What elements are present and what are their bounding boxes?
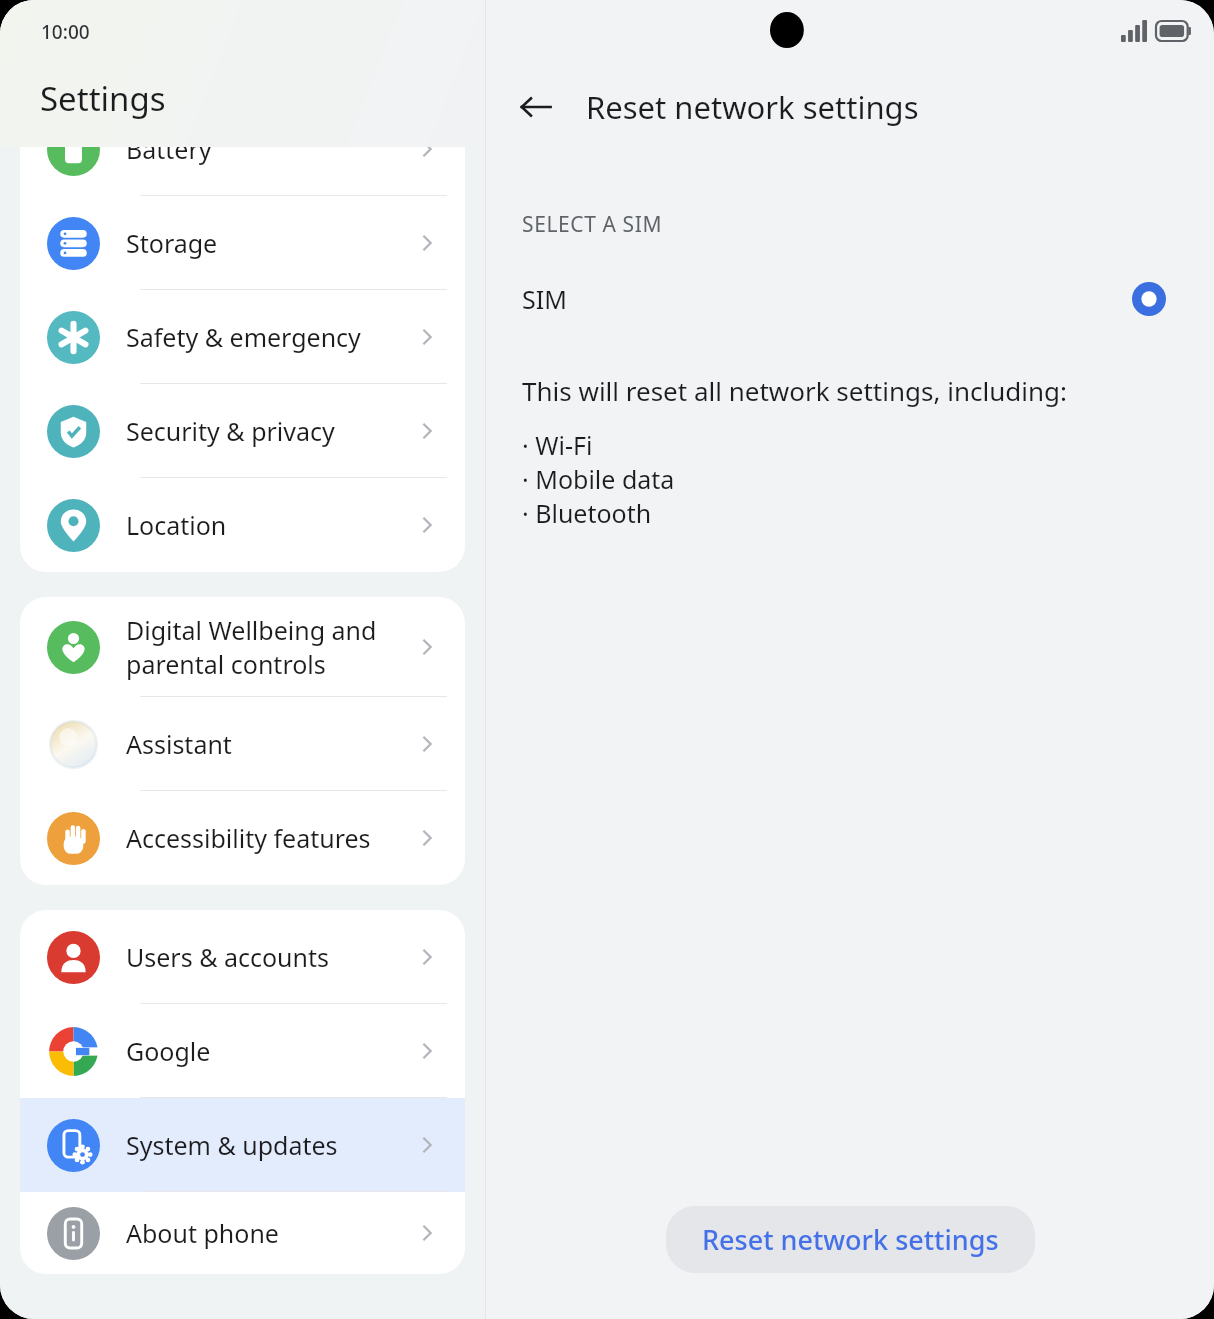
staticText: Security & privacy <box>126 414 407 448</box>
staticText: · Mobile data <box>522 462 675 496</box>
staticText: Storage <box>126 226 407 260</box>
button[interactable]: Assistant <box>20 697 465 791</box>
staticText: Users & accounts <box>126 940 407 974</box>
staticText: Settings <box>40 76 166 121</box>
staticText: Reset network settings <box>702 1221 999 1258</box>
staticText: Location <box>126 508 407 542</box>
staticText: Safety & emergency <box>126 320 407 354</box>
staticText: Google <box>126 1034 407 1068</box>
button[interactable]: Digital Wellbeing and parental controls <box>20 597 465 697</box>
staticText: Assistant <box>126 727 407 761</box>
staticText: SELECT A SIM <box>522 210 663 239</box>
staticText: SIM <box>522 282 1132 316</box>
staticText: Accessibility features <box>126 821 407 855</box>
button[interactable]: Reset network settings <box>666 1206 1035 1273</box>
button[interactable]: Location <box>20 478 465 572</box>
button[interactable]: Back <box>508 79 564 135</box>
staticText: About phone <box>126 1216 407 1250</box>
staticText: 10:00 <box>41 19 90 45</box>
staticText: · Wi-Fi <box>522 428 593 462</box>
staticText: This will reset all network settings, in… <box>522 373 1067 408</box>
button[interactable]: Safety & emergency <box>20 290 465 384</box>
staticText: Reset network settings <box>586 86 919 128</box>
staticText: · Bluetooth <box>522 496 652 530</box>
button[interactable]: Accessibility features <box>20 791 465 885</box>
button[interactable]: SIM <box>486 273 1214 325</box>
button[interactable]: Security & privacy <box>20 384 465 478</box>
staticText: Battery <box>126 132 407 166</box>
button[interactable]: Users & accounts <box>20 910 465 1004</box>
staticText: System & updates <box>126 1128 407 1162</box>
button[interactable]: About phone <box>20 1192 465 1274</box>
staticText: Digital Wellbeing and parental controls <box>126 613 407 681</box>
button[interactable]: Storage <box>20 196 465 290</box>
button[interactable]: Battery <box>20 102 465 196</box>
button[interactable]: System & updates <box>20 1098 465 1192</box>
button[interactable]: Google <box>20 1004 465 1098</box>
